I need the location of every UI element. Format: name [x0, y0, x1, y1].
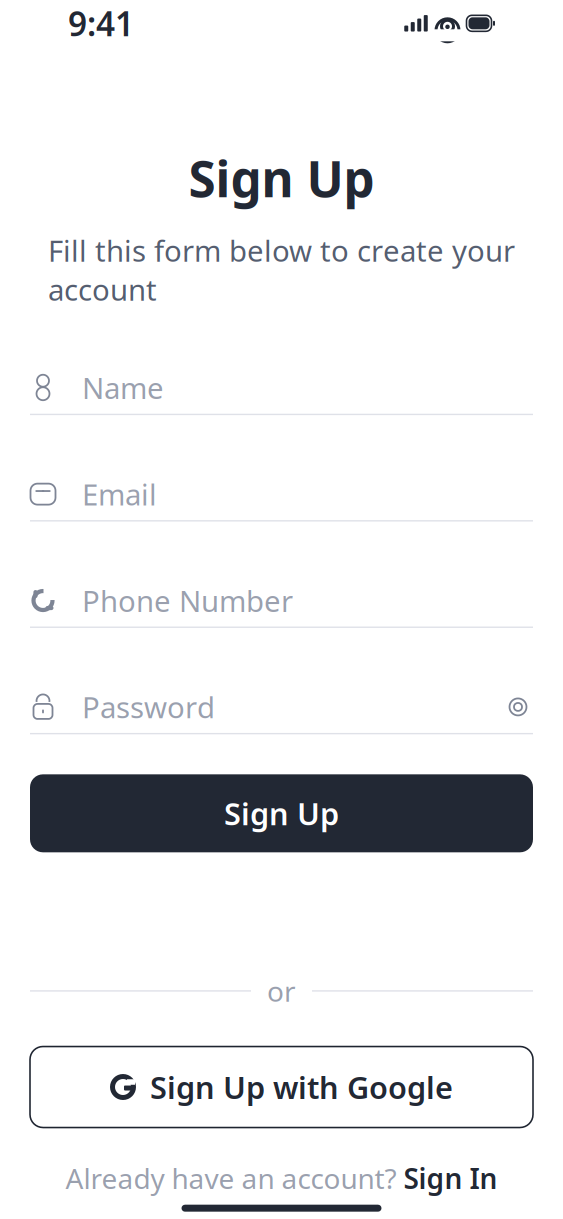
staticText: Phone Number	[82, 581, 293, 620]
staticText: Already have an account?	[65, 1159, 403, 1197]
staticText: Fill this form below to create your acco…	[48, 231, 515, 309]
button[interactable]: Already have an account?	[65, 1159, 497, 1197]
staticText: Email	[82, 475, 157, 514]
staticText: Sign Up with Google	[150, 1067, 453, 1107]
button[interactable]: Password	[30, 681, 533, 734]
button[interactable]: Sign Up with Google	[30, 1046, 533, 1127]
button[interactable]: Email	[30, 468, 533, 521]
button[interactable]: Sign Up	[30, 774, 533, 852]
staticText: Password	[82, 687, 215, 726]
button[interactable]: Name	[30, 362, 533, 415]
staticText: 9:41	[68, 1, 134, 45]
staticText: Sign Up	[224, 793, 339, 834]
staticText: Sign In	[403, 1159, 497, 1197]
button[interactable]: Phone Number	[30, 574, 533, 628]
staticText: Name	[82, 368, 164, 407]
staticText: Sign Up	[188, 145, 374, 211]
staticText: or	[267, 972, 296, 1009]
